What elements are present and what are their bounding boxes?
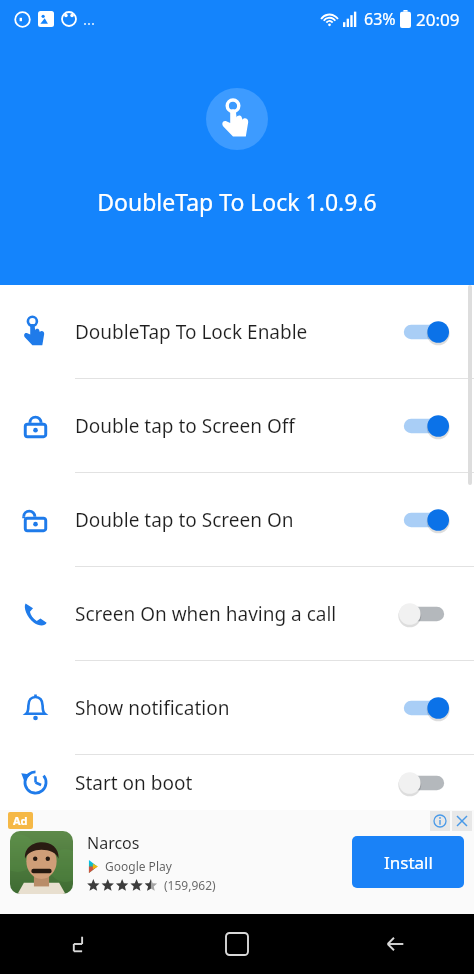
button[interactable]: Narcos [0,810,474,914]
button[interactable]: Show notification [0,661,474,754]
button[interactable]: Toggle on [396,312,452,352]
button[interactable]: Start on boot [0,755,474,810]
staticText: 63% [364,8,396,30]
staticText: Narcos [87,832,140,854]
button[interactable]: Toggle off [396,594,452,634]
button[interactable]: Double tap to Screen On [0,473,474,566]
staticText: Start on boot [75,770,396,796]
button[interactable]: Ad info [430,811,450,831]
staticText: 20:09 [416,8,460,31]
button[interactable]: Double tap to Screen Off [0,379,474,472]
button[interactable]: DoubleTap To Lock Enable [0,285,474,378]
button[interactable]: Toggle off [396,763,452,803]
staticText: Double tap to Screen Off [75,413,396,439]
button[interactable]: Home [158,914,316,974]
staticText: Double tap to Screen On [75,507,396,533]
staticText: Install [384,851,433,874]
staticText: Google Play [105,858,172,874]
staticText: DoubleTap To Lock 1.0.9.6 [97,186,377,217]
staticText: Screen On when having a call [75,601,396,627]
staticText: DoubleTap To Lock Enable [75,319,396,345]
button[interactable]: Back [316,914,474,974]
button[interactable]: Recent apps [0,914,158,974]
button[interactable]: Install [352,836,464,888]
button[interactable]: Close ad [452,811,472,831]
staticText: ... [83,9,96,29]
staticText: Ad [13,813,28,828]
staticText: Show notification [75,695,396,721]
button[interactable]: Toggle on [396,406,452,446]
button[interactable]: Toggle on [396,688,452,728]
button[interactable]: Screen On when having a call [0,567,474,660]
staticText: (159,962) [164,877,216,893]
button[interactable]: Toggle on [396,500,452,540]
